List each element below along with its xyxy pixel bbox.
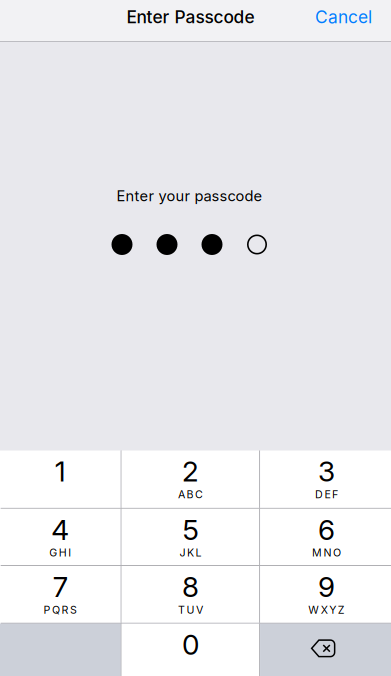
staticText: GHI (49, 546, 71, 559)
staticText: MNO (312, 546, 341, 559)
button[interactable]: 3 (260, 450, 391, 508)
staticText: ABC (178, 488, 203, 501)
staticText: 7 (53, 570, 68, 604)
button[interactable]: 4 (0, 509, 121, 565)
staticText: 1 (55, 454, 66, 488)
staticText: 0 (182, 628, 199, 662)
button[interactable]: Delete (260, 624, 391, 676)
staticText: 2 (182, 454, 199, 488)
button[interactable]: 9 (260, 566, 391, 623)
staticText: Cancel (315, 6, 372, 27)
staticText: 8 (182, 570, 199, 604)
staticText: 3 (318, 454, 335, 488)
button[interactable]: 6 (260, 509, 391, 565)
button[interactable]: 8 (122, 566, 259, 623)
staticText: 9 (318, 570, 335, 604)
staticText: WXYZ (308, 603, 345, 616)
button[interactable]: 7 (0, 566, 121, 623)
staticText: JKL (179, 546, 201, 559)
staticText: 4 (51, 513, 69, 547)
button[interactable]: 1 (0, 450, 121, 508)
button[interactable]: 5 (122, 509, 259, 565)
staticText: TUV (178, 603, 203, 616)
staticText: 5 (182, 513, 198, 547)
button[interactable]: 0 (122, 624, 259, 676)
staticText: Enter your passcode (116, 187, 262, 205)
button[interactable]: Cancel (296, 0, 391, 41)
staticText: Enter Passcode (126, 6, 254, 27)
button[interactable]: 2 (122, 450, 259, 508)
staticText: DEF (315, 488, 338, 501)
staticText: PQRS (44, 603, 77, 616)
staticText: 6 (318, 513, 335, 547)
